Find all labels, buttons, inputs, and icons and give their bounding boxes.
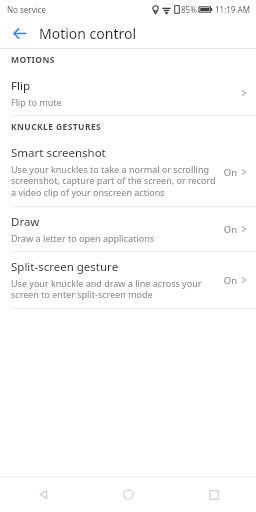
staticText: Flip to mute	[11, 96, 62, 108]
staticText: On	[223, 166, 237, 179]
staticText: Use your knuckles to take a normal or sc…	[11, 163, 217, 199]
staticText: 11:19 AM	[215, 4, 250, 15]
staticText: Draw	[11, 214, 40, 230]
button[interactable]: Back	[4, 19, 34, 48]
button[interactable]: Home	[86, 477, 171, 512]
staticText: Smart screenshot	[11, 145, 106, 161]
button[interactable]: Draw	[0, 207, 256, 251]
staticText: No service	[7, 4, 47, 15]
button[interactable]: Smart screenshot	[0, 138, 256, 206]
staticText: Motion control	[39, 24, 137, 43]
staticText: Draw a letter to open applications	[11, 232, 155, 244]
staticText: Split-screen gesture	[11, 259, 119, 275]
button[interactable]: Split-screen gesture	[0, 252, 256, 308]
staticText: 85%	[181, 4, 197, 15]
button[interactable]: Back	[0, 477, 86, 512]
staticText: Flip	[11, 78, 30, 94]
staticText: On	[223, 223, 237, 236]
staticText: MOTIONS	[11, 54, 55, 66]
staticText: KNUCKLE GESTURES	[11, 121, 102, 133]
button[interactable]: Recent apps	[171, 477, 256, 512]
button[interactable]: Flip	[0, 71, 256, 115]
staticText: Use your knuckle and draw a line across …	[11, 277, 217, 301]
staticText: On	[223, 274, 237, 287]
